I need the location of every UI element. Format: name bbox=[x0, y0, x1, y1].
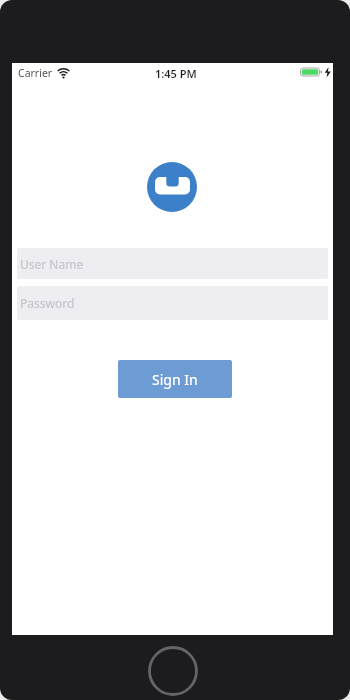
staticText: 1:45 PM bbox=[155, 66, 197, 81]
staticText: Sign In bbox=[152, 370, 198, 389]
staticText: User Name bbox=[20, 256, 84, 272]
button[interactable] bbox=[148, 646, 198, 696]
button[interactable]: Sign In bbox=[118, 360, 232, 398]
staticText: Carrier bbox=[18, 66, 53, 80]
staticText: Password bbox=[20, 295, 75, 311]
button[interactable]: User Name bbox=[17, 248, 328, 279]
button[interactable]: Password bbox=[17, 286, 328, 320]
